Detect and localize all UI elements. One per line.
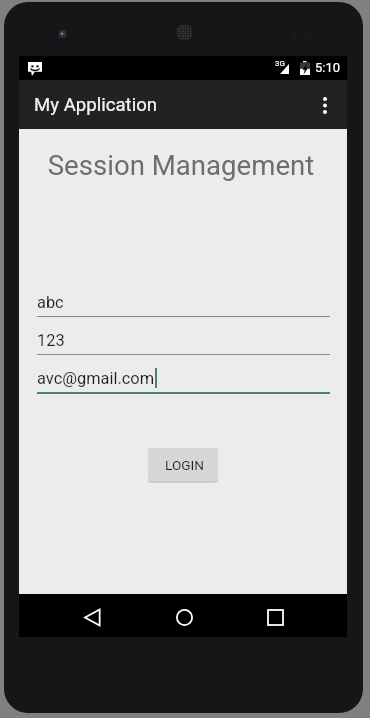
staticText: Session Management — [17, 149, 345, 181]
staticText: 123 — [37, 331, 65, 350]
button[interactable]: Home — [160, 596, 208, 639]
button[interactable]: Back — [68, 596, 116, 639]
staticText: avc@gmail.com — [37, 369, 155, 388]
button[interactable]: Recents — [251, 596, 299, 639]
staticText: abc — [37, 293, 64, 312]
staticText: 3G — [275, 59, 285, 68]
button[interactable]: More options — [303, 83, 347, 127]
staticText: My Application — [34, 94, 158, 116]
staticText: LOGIN — [165, 457, 204, 473]
button[interactable]: LOGIN — [148, 448, 218, 481]
staticText: 5:10 — [315, 60, 341, 75]
